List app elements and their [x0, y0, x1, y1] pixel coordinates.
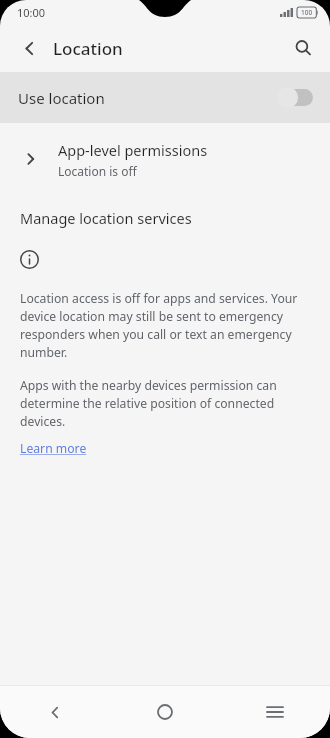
button[interactable]: Home — [110, 686, 220, 738]
staticText: Location — [53, 37, 123, 60]
button[interactable]: App-level permissions — [0, 123, 330, 195]
button[interactable]: Learn more — [20, 440, 87, 457]
staticText: Manage location services — [20, 208, 192, 228]
button[interactable]: Back — [0, 686, 110, 738]
button[interactable]: Use location — [0, 72, 330, 123]
button[interactable]: Search — [283, 28, 323, 68]
staticText: App-level permissions — [58, 140, 208, 160]
button[interactable]: Recent apps — [220, 686, 330, 738]
staticText: Apps with the nearby devices permission … — [20, 377, 306, 430]
staticText: 10:00 — [17, 5, 46, 20]
staticText: Location access is off for apps and serv… — [20, 290, 306, 361]
staticText: Location is off — [58, 163, 137, 179]
staticText: Use location — [18, 88, 105, 108]
staticText: 100 — [301, 8, 313, 17]
staticText: Learn more — [20, 440, 87, 457]
button[interactable]: Back — [9, 28, 49, 68]
